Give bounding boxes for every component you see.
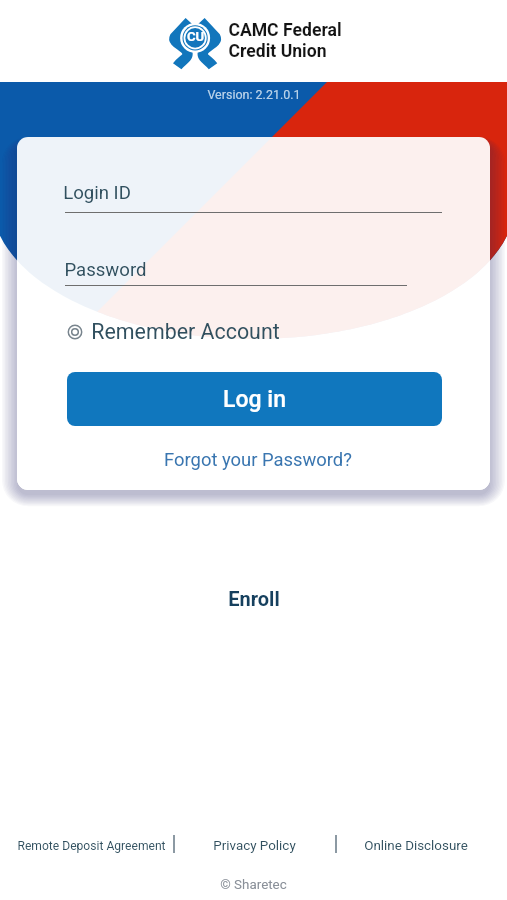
staticText: Remote Deposit Agreement (17, 839, 166, 853)
staticText: Log in (223, 386, 286, 413)
button[interactable]: Remote Deposit Agreement (17, 839, 166, 853)
button[interactable]: Log in (67, 372, 442, 426)
staticText: Version: 2.21.0.1 (207, 87, 301, 102)
staticText: Enroll (228, 587, 280, 610)
staticText: Login ID (63, 182, 131, 204)
button[interactable]: Remember Account (67, 319, 280, 344)
staticText: CAMC Federal (228, 20, 342, 41)
staticText: Remember Account (91, 319, 280, 344)
button[interactable]: Privacy Policy (213, 838, 296, 854)
staticText: © Sharetec (220, 877, 287, 893)
staticText: Privacy Policy (213, 838, 296, 854)
staticText: Credit Union (228, 41, 327, 62)
button[interactable]: Enroll (0, 587, 507, 610)
staticText: Forgot your Password? (164, 449, 352, 471)
staticText: Password (64, 259, 147, 281)
button[interactable]: Forgot your Password? (21, 449, 490, 471)
staticText: Online Disclosure (364, 838, 468, 854)
button[interactable]: Online Disclosure (364, 838, 468, 854)
